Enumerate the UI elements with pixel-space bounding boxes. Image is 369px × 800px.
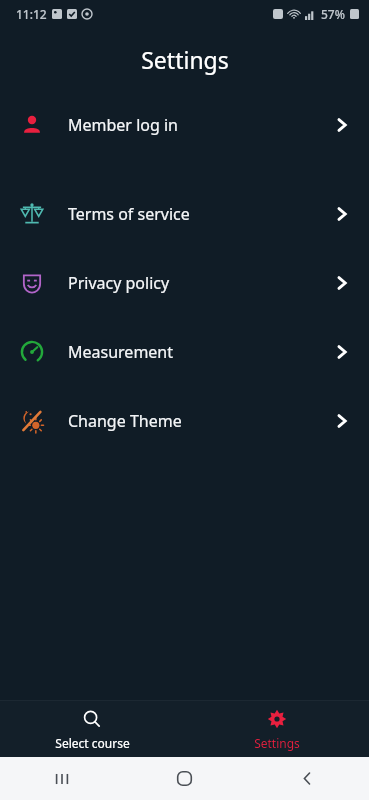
- button[interactable]: Member log in: [0, 102, 369, 147]
- button[interactable]: Back: [246, 757, 369, 800]
- staticText: Privacy policy: [68, 272, 333, 294]
- button[interactable]: Terms of service: [0, 191, 369, 236]
- button[interactable]: Settings: [184, 701, 369, 757]
- staticText: Change Theme: [68, 410, 333, 432]
- button[interactable]: Home: [123, 757, 246, 800]
- staticText: Settings: [254, 735, 300, 751]
- button[interactable]: Select course: [0, 701, 184, 757]
- staticText: 57%: [321, 6, 345, 22]
- staticText: Select course: [55, 735, 130, 751]
- button[interactable]: Privacy policy: [0, 260, 369, 305]
- staticText: Measurement: [68, 341, 333, 363]
- button[interactable]: Change Theme: [0, 398, 369, 443]
- staticText: Terms of service: [68, 203, 333, 225]
- staticText: Member log in: [68, 114, 333, 136]
- staticText: 11:12: [16, 6, 47, 22]
- staticText: Settings: [141, 44, 229, 75]
- button[interactable]: Measurement: [0, 329, 369, 374]
- button[interactable]: Recent apps: [0, 757, 123, 800]
